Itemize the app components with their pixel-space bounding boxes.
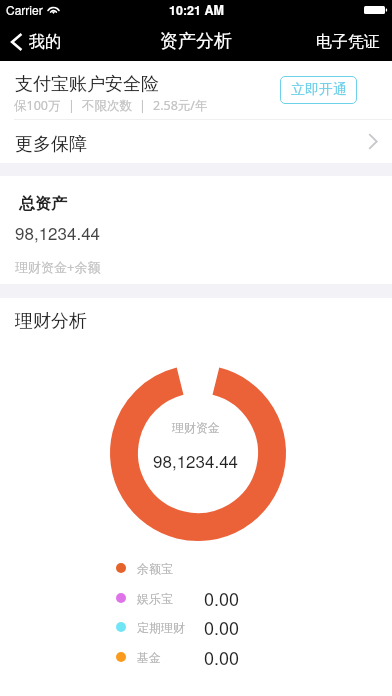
staticText: 娱乐宝 [137, 591, 173, 606]
staticText: 不限次数 [82, 98, 132, 114]
staticText: | [68, 97, 75, 114]
staticText: 定期理财 [137, 620, 185, 635]
staticText: 我的 [29, 32, 61, 52]
staticText: Carrier [6, 1, 43, 18]
button[interactable]: Back [0, 26, 71, 58]
button[interactable]: 支付宝账户安全险 [0, 61, 392, 119]
staticText: 理财分析 [15, 310, 87, 333]
staticText: 电子凭证 [316, 32, 380, 52]
staticText: 基金 [137, 650, 161, 665]
staticText: 2.58元/年 [153, 97, 208, 114]
staticText: 0.00 [204, 644, 240, 670]
button[interactable]: 电子凭证 [306, 26, 392, 58]
staticText: 理财资金 [172, 420, 220, 435]
staticText: 立即开通 [291, 81, 347, 99]
button[interactable]: 娱乐宝 [0, 584, 392, 612]
button[interactable]: 定期理财 [0, 613, 392, 641]
staticText: 0.00 [204, 585, 240, 611]
staticText: 支付宝账户安全险 [15, 73, 159, 96]
other: Back [11, 33, 22, 51]
other: More [368, 133, 378, 150]
button[interactable]: 基金 [0, 643, 392, 671]
staticText: 理财资金+余额 [15, 258, 101, 276]
staticText: 10:21 AM [169, 1, 224, 19]
staticText: 余额宝 [137, 561, 173, 576]
staticText: 0.00 [204, 614, 240, 640]
staticText: 98,1234.44 [153, 448, 239, 472]
staticText: 保100万 [14, 97, 61, 114]
staticText: 98,1234.44 [15, 220, 101, 244]
button[interactable]: 余额宝 [0, 554, 392, 582]
staticText: 总资产 [19, 194, 67, 214]
button[interactable]: 立即开通 [280, 76, 357, 104]
staticText: | [139, 97, 146, 114]
staticText: 更多保障 [15, 133, 87, 156]
button[interactable]: 更多保障 [0, 120, 392, 163]
staticText: 资产分析 [160, 30, 232, 53]
